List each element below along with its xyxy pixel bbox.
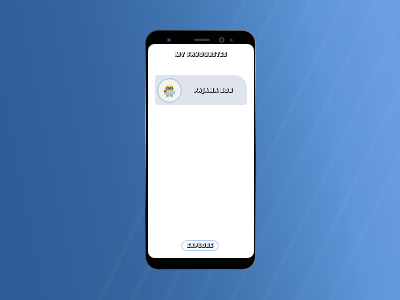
staticText: EXPLORE: [187, 242, 213, 249]
staticText: PAJAMA BOB: [195, 88, 234, 95]
staticText: EXPLORE: [187, 242, 213, 249]
button[interactable]: EXPLORE: [181, 240, 219, 251]
staticText: EXPLORE: [187, 242, 213, 249]
staticText: MY FAVOURITES: [149, 51, 254, 58]
staticText: PAJAMA BOB: [194, 87, 233, 94]
button[interactable]: PAJAMA BOB: [155, 75, 247, 105]
staticText: PAJAMA BOB: [194, 87, 233, 94]
staticText: MY FAVOURITES: [149, 50, 254, 57]
staticText: MY FAVOURITES: [148, 50, 254, 57]
staticText: PAJAMA BOB: [194, 88, 233, 95]
staticText: EXPLORE: [187, 242, 213, 249]
staticText: MY FAVOURITES: [148, 51, 254, 58]
staticText: MY FAVOURITES: [148, 50, 254, 57]
staticText: MY FAVOURITES: [148, 50, 254, 57]
staticText: PAJAMA BOB: [194, 87, 233, 94]
staticText: MY FAVOURITES: [149, 50, 254, 57]
staticText: EXPLORE: [188, 242, 214, 249]
staticText: PAJAMA BOB: [194, 88, 233, 95]
staticText: EXPLORE: [187, 243, 213, 250]
staticText: MY FAVOURITES: [148, 51, 254, 58]
staticText: EXPLORE: [188, 242, 214, 249]
staticText: PAJAMA BOB: [195, 87, 234, 94]
staticText: PAJAMA BOB: [194, 87, 233, 94]
staticText: EXPLORE: [188, 243, 214, 250]
staticText: PAJAMA BOB: [195, 87, 234, 94]
staticText: EXPLORE: [187, 243, 213, 250]
staticText: MY FAVOURITES: [148, 50, 254, 57]
